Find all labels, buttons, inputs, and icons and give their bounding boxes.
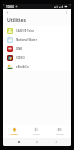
staticText: eKinikiCo xyxy=(16,65,29,69)
button[interactable]: eKinikiCo xyxy=(3,62,71,71)
staticText: VIDEO xyxy=(16,56,25,60)
staticText: CASEVE Telco xyxy=(16,29,35,33)
staticText: Settings xyxy=(56,133,64,136)
button[interactable]: Home xyxy=(34,139,40,145)
staticText: DNB xyxy=(16,47,23,51)
button[interactable]: DNB xyxy=(3,44,71,53)
staticText: 10:04 xyxy=(6,5,14,9)
button[interactable]: VIDEO xyxy=(3,53,71,62)
button[interactable]: Back xyxy=(5,10,10,15)
button[interactable]: Utilities xyxy=(3,125,25,138)
button[interactable]: Recents xyxy=(16,139,22,145)
button[interactable]: Back xyxy=(53,139,59,145)
staticText: National Water xyxy=(16,38,37,42)
button[interactable]: Library xyxy=(25,125,48,138)
staticText: Utilities xyxy=(7,17,26,24)
button[interactable]: Settings xyxy=(48,125,71,138)
button[interactable]: More options xyxy=(64,10,69,15)
staticText: Utilities xyxy=(10,133,18,136)
button[interactable]: CASEVE Telco xyxy=(3,26,71,35)
staticText: Library xyxy=(33,133,40,136)
button[interactable]: National Water xyxy=(3,35,71,44)
